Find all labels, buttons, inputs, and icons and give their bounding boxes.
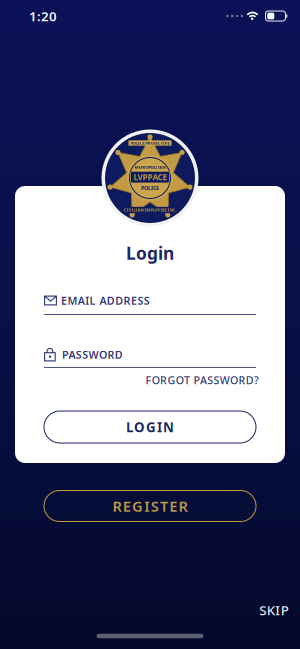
staticText: 1:20 — [29, 7, 57, 25]
staticText: CIVILIAN EMPLOYEES INC. — [123, 207, 176, 213]
staticText: EMAIL ADDRESS — [61, 293, 150, 308]
staticText: Login — [126, 241, 174, 264]
button[interactable]: LOGIN — [44, 411, 256, 443]
staticText: LOGIN — [126, 418, 174, 436]
staticText: METROPOLITAN — [134, 164, 165, 170]
staticText: LVPPACE — [133, 172, 166, 182]
button[interactable]: SKIP — [259, 601, 289, 619]
staticText: SKIP — [259, 601, 289, 619]
staticText: REGISTER — [112, 496, 188, 516]
staticText: PASSWORD — [62, 347, 123, 362]
staticText: FORGOT PASSWORD? — [145, 373, 259, 387]
button[interactable]: REGISTER — [44, 490, 256, 521]
staticText: POLICE PROTECTIVE — [130, 140, 169, 146]
button[interactable]: FORGOT PASSWORD? — [142, 373, 256, 387]
staticText: POLICE — [141, 184, 159, 191]
